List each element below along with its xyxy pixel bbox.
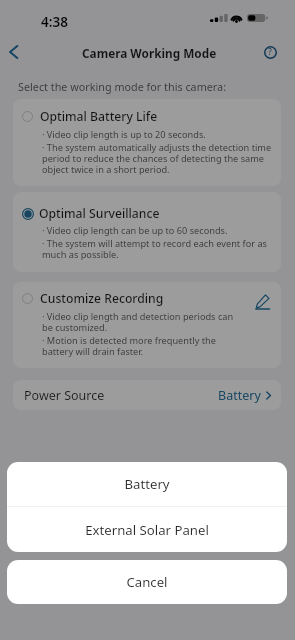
staticText: 4:38 [41, 13, 68, 31]
button[interactable]: Help [258, 40, 282, 64]
button[interactable]: Optimal Surveillance [13, 192, 281, 272]
staticText: Camera Working Mode [82, 45, 217, 61]
button[interactable]: Battery [7, 462, 287, 506]
staticText: Cancel [126, 573, 168, 591]
staticText: Battery [218, 387, 261, 404]
button[interactable]: Power Source [13, 380, 281, 410]
button[interactable]: Optimal Battery Life [13, 99, 281, 186]
staticText: · Motion is detected more frequently the… [42, 334, 246, 358]
button[interactable]: Back [0, 39, 26, 65]
staticText: External Solar Panel [85, 521, 209, 539]
staticText: Select the working mode for this camera: [18, 79, 227, 94]
staticText: · The system will attempt to record each… [42, 237, 278, 261]
button[interactable]: Edit [254, 293, 270, 309]
button[interactable]: Customize Recording [13, 282, 281, 368]
staticText: Battery [124, 475, 170, 493]
button[interactable]: Cancel [7, 560, 287, 604]
staticText: · Video clip length can be up to 60 seco… [42, 224, 228, 237]
button[interactable]: External Solar Panel [7, 507, 287, 552]
staticText: ? [268, 46, 272, 58]
staticText: Optimal Battery Life [40, 108, 158, 125]
staticText: · Video clip length and detection period… [42, 310, 246, 334]
staticText: · The system automatically adjusts the d… [42, 141, 278, 176]
staticText: Customize Recording [40, 290, 164, 307]
staticText: Power Source [24, 387, 105, 404]
staticText: · Video clip length is up to 20 seconds. [42, 128, 206, 141]
staticText: Optimal Surveillance [39, 205, 160, 222]
